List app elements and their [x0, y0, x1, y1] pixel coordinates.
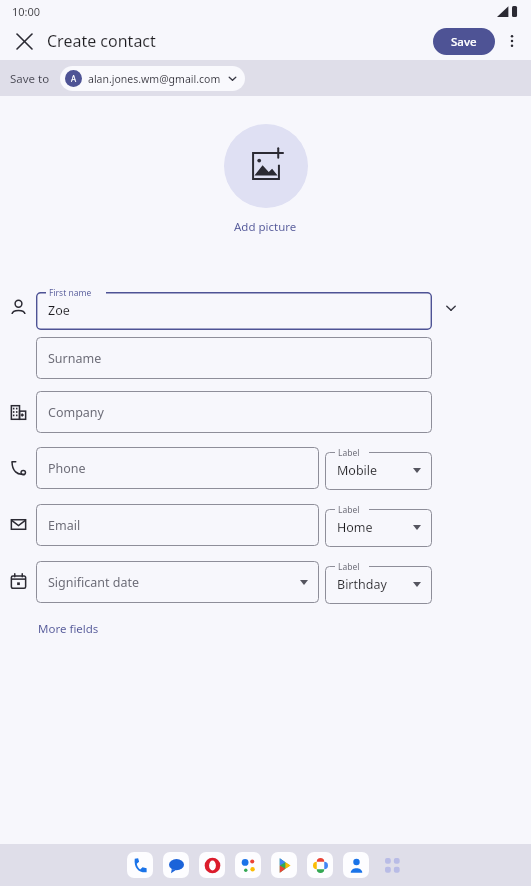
button[interactable]: opera: [199, 852, 225, 878]
staticText: 10:00: [12, 4, 41, 19]
button[interactable]: phone: [127, 852, 153, 878]
button[interactable]: A: [60, 66, 245, 91]
button[interactable]: Label: [325, 559, 432, 604]
button[interactable]: Company: [36, 391, 432, 433]
staticText: First name: [49, 287, 92, 299]
button[interactable]: messages: [163, 852, 189, 878]
button[interactable]: Email: [36, 504, 319, 546]
staticText: Mobile: [337, 462, 378, 479]
button[interactable]: More options: [498, 27, 526, 55]
staticText: Email: [48, 517, 81, 534]
button[interactable]: photos: [307, 852, 333, 878]
button[interactable]: assistant: [235, 852, 261, 878]
staticText: Label: [338, 447, 360, 459]
button[interactable]: contacts: [343, 852, 369, 878]
button[interactable]: allapps: [379, 852, 405, 878]
button[interactable]: Label: [325, 502, 432, 547]
staticText: A: [71, 73, 77, 84]
staticText: Significant date: [48, 574, 140, 591]
button[interactable]: Save: [433, 28, 495, 55]
button[interactable]: More fields: [36, 618, 101, 640]
staticText: Create contact: [47, 30, 156, 52]
button[interactable]: Expand name fields: [436, 293, 466, 323]
button[interactable]: Phone: [36, 447, 319, 489]
button[interactable]: Surname: [36, 337, 432, 379]
staticText: Company: [48, 404, 104, 421]
staticText: More fields: [38, 621, 99, 637]
staticText: Surname: [48, 350, 102, 367]
button[interactable]: Label: [325, 445, 432, 490]
staticText: Label: [338, 561, 360, 573]
button[interactable]: First name: [36, 285, 432, 330]
staticText: Birthday: [337, 576, 387, 593]
button[interactable]: play: [271, 852, 297, 878]
staticText: Phone: [48, 460, 86, 477]
staticText: Zoe: [48, 302, 70, 319]
staticText: Add picture: [234, 219, 297, 235]
button[interactable]: Significant date: [36, 561, 319, 603]
button[interactable]: Close: [8, 25, 40, 57]
staticText: Save to: [10, 71, 50, 87]
staticText: Home: [337, 519, 373, 536]
staticText: Save: [451, 34, 477, 50]
button[interactable]: Add picture: [224, 124, 308, 208]
staticText: alan.jones.wm@gmail.com: [88, 72, 221, 86]
staticText: Label: [338, 504, 360, 516]
